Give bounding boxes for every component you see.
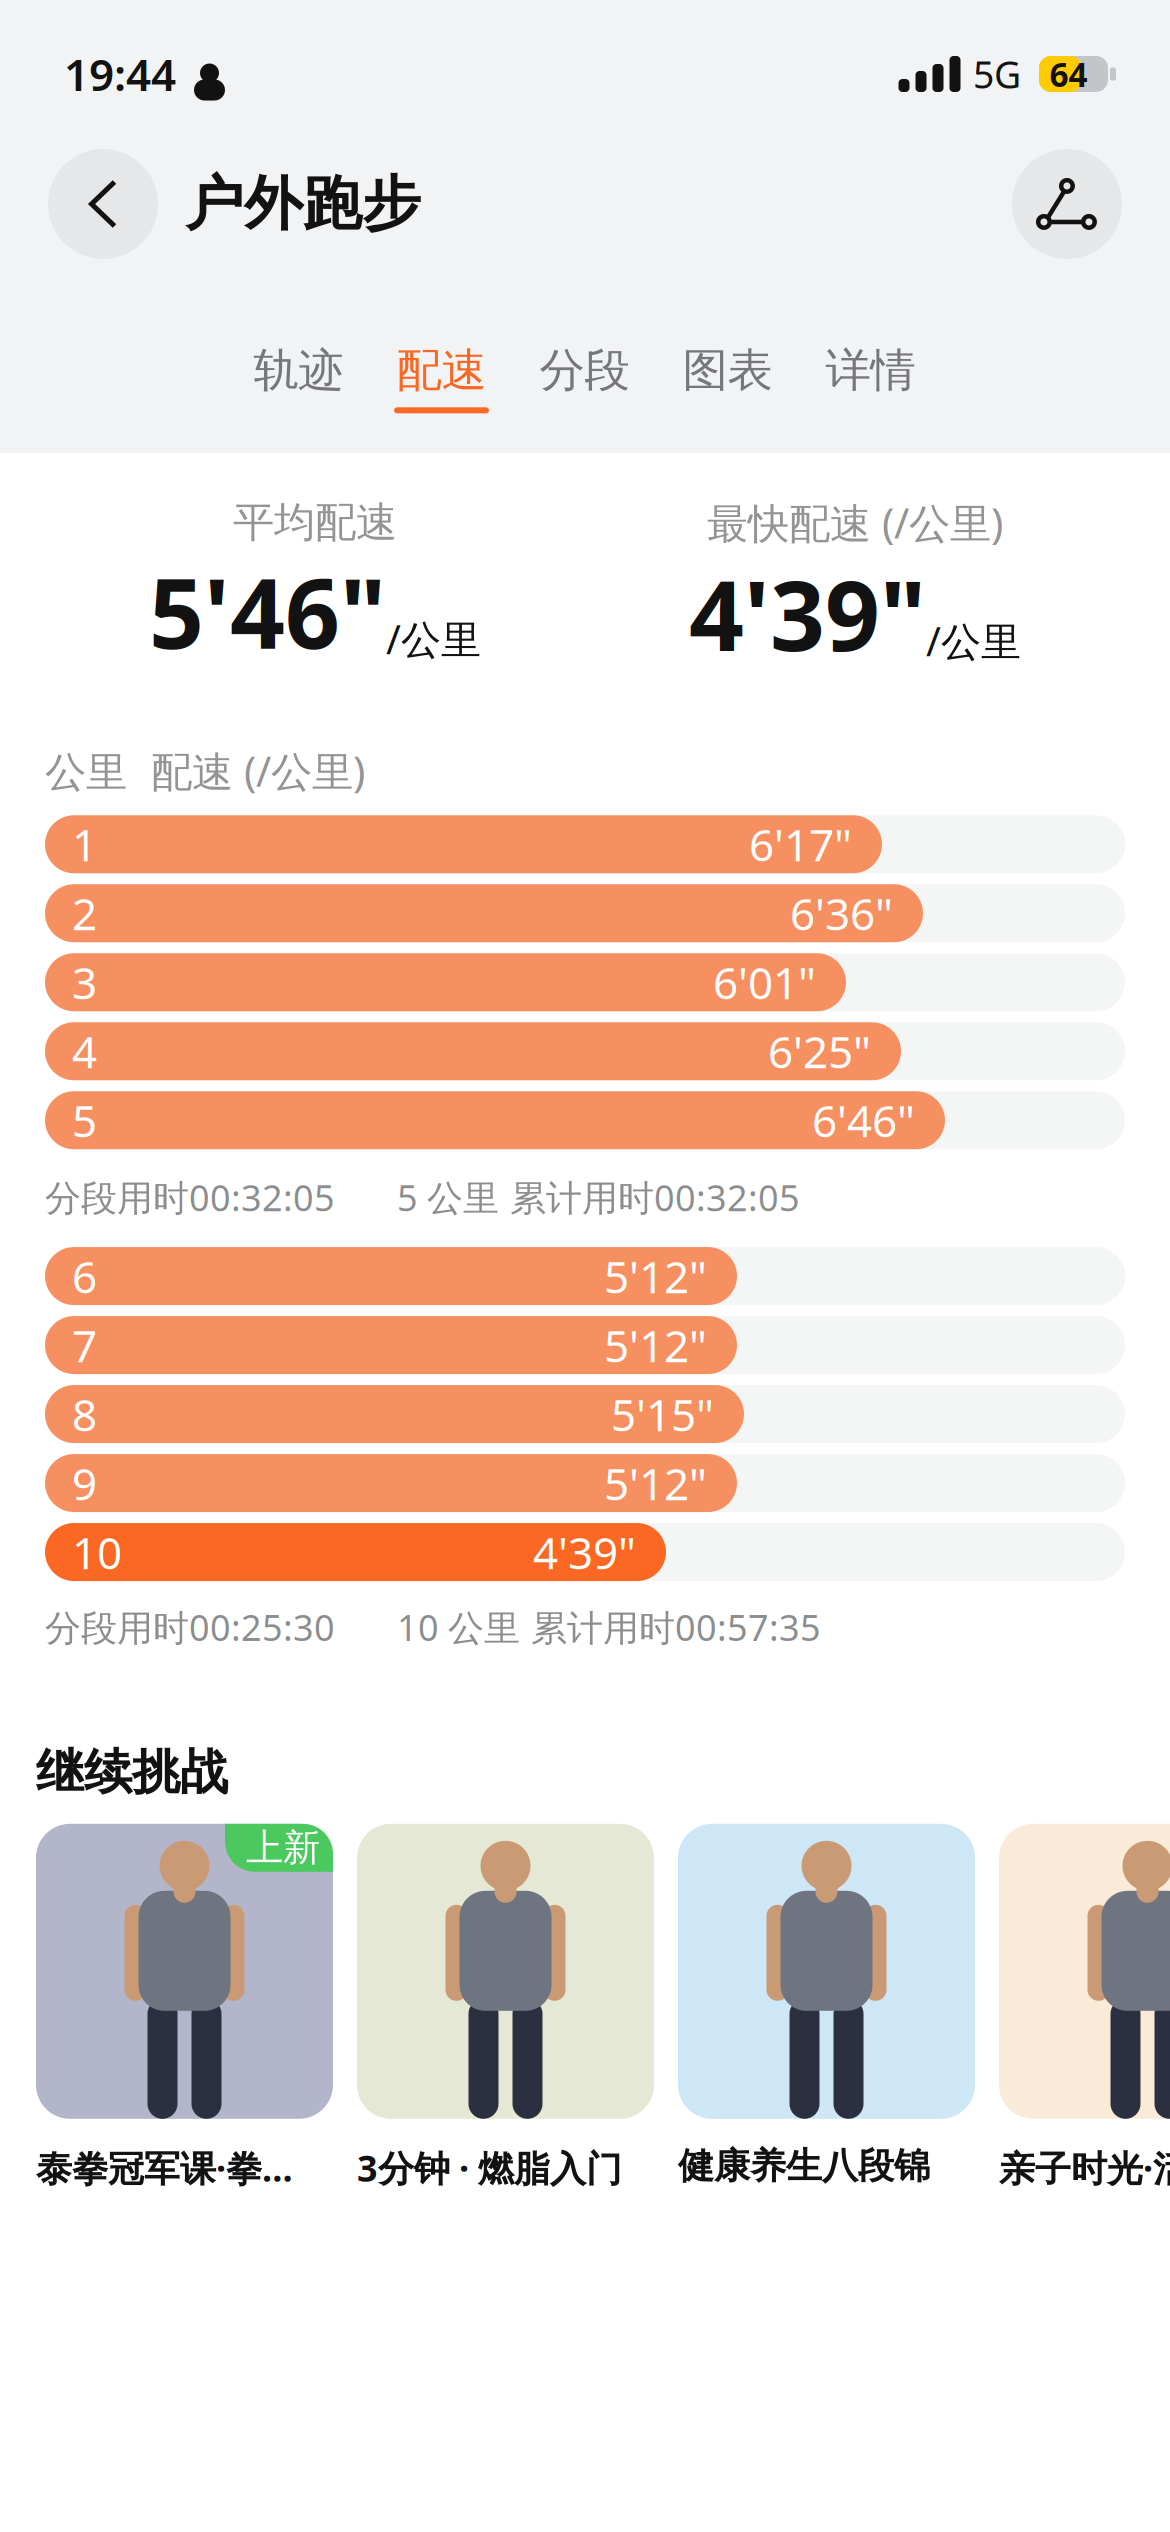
- button[interactable]: 配速: [370, 312, 513, 421]
- staticText: 分段用时00:25:30: [45, 1603, 335, 1651]
- button[interactable]: 上新: [36, 1824, 333, 2192]
- staticText: 5'46": [149, 548, 386, 675]
- staticText: 2: [72, 884, 97, 942]
- staticText: 3分钟 · 燃脂入门: [357, 2144, 622, 2192]
- staticText: 10: [72, 1523, 122, 1581]
- staticText: 10 公里 累计用时00:57:35: [397, 1603, 821, 1651]
- button[interactable]: 图表: [656, 312, 799, 421]
- staticText: 64: [1049, 52, 1087, 96]
- button[interactable]: 详情: [799, 312, 942, 421]
- staticText: 5 公里 累计用时00:32:05: [397, 1173, 800, 1221]
- staticText: 19:44: [64, 45, 176, 103]
- staticText: 最快配速 (/公里): [707, 495, 1003, 550]
- staticText: 9: [72, 1454, 97, 1512]
- button[interactable]: 返回: [48, 149, 158, 259]
- staticText: 公里 配速 (/公里): [45, 743, 365, 798]
- staticText: 图表: [682, 343, 772, 398]
- button[interactable]: 3分钟 · 燃脂入门: [357, 1824, 654, 2192]
- staticText: /公里: [386, 612, 481, 665]
- staticText: 5: [72, 1091, 97, 1149]
- staticText: 5'12": [604, 1316, 707, 1374]
- button[interactable]: 健康养生八段锦: [678, 1824, 975, 2188]
- staticText: 1: [72, 815, 97, 873]
- staticText: 配速: [396, 343, 486, 398]
- staticText: 户外跑步: [185, 168, 421, 240]
- staticText: 8: [72, 1385, 97, 1443]
- button[interactable]: 分段: [513, 312, 656, 421]
- staticText: 亲子时光·活…: [999, 2144, 1170, 2192]
- staticText: 3: [72, 953, 97, 1011]
- staticText: 5'15": [611, 1385, 714, 1443]
- staticText: 6'46": [812, 1091, 915, 1149]
- button[interactable]: 亲子时光·活…: [999, 1824, 1170, 2192]
- staticText: 平均配速: [233, 497, 397, 548]
- button[interactable]: 分享: [1012, 149, 1122, 259]
- staticText: /公里: [926, 614, 1021, 667]
- button[interactable]: 轨迹: [227, 312, 370, 421]
- staticText: 6'36": [790, 884, 893, 942]
- staticText: 6: [72, 1247, 97, 1305]
- staticText: 4'39": [689, 550, 926, 677]
- staticText: 4'39": [533, 1523, 636, 1581]
- staticText: 6'01": [713, 953, 816, 1011]
- staticText: 分段用时00:32:05: [45, 1173, 335, 1221]
- staticText: 6'25": [768, 1022, 871, 1080]
- staticText: 6'17": [749, 815, 852, 873]
- staticText: 5G: [973, 49, 1021, 99]
- staticText: 5'12": [604, 1247, 707, 1305]
- staticText: 4: [72, 1022, 97, 1080]
- staticText: 泰拳冠军课·拳…: [36, 2144, 293, 2192]
- staticText: 健康养生八段锦: [678, 2144, 930, 2188]
- staticText: 轨迹: [253, 343, 343, 398]
- staticText: 详情: [825, 343, 915, 398]
- staticText: 上新: [246, 1825, 320, 1871]
- staticText: 分段: [539, 343, 629, 398]
- staticText: 继续挑战: [36, 1743, 228, 1802]
- staticText: 5'12": [604, 1454, 707, 1512]
- staticText: 7: [72, 1316, 97, 1374]
